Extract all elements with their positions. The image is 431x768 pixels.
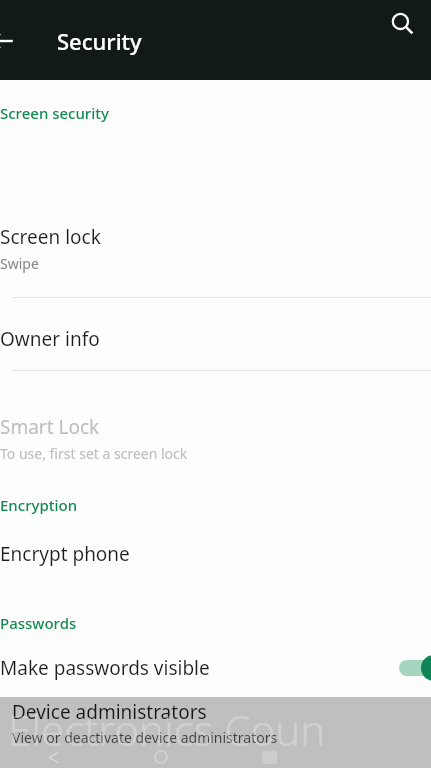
staticText: Passwords: [0, 613, 77, 633]
staticText: Encryption: [0, 495, 78, 515]
staticText: Device administrators: [12, 699, 207, 725]
button[interactable]: Search: [379, 0, 425, 46]
button[interactable]: Home: [107, 750, 215, 764]
button[interactable]: Screen lock: [12, 217, 431, 279]
button[interactable]: Device administrators: [0, 697, 431, 749]
staticText: Owner info: [0, 326, 100, 352]
button[interactable]: Smart Lock: [12, 407, 431, 469]
staticText: Encrypt phone: [0, 541, 130, 567]
staticText: Electronics Coun: [8, 701, 326, 758]
staticText: Smart Lock: [0, 414, 100, 440]
staticText: Screen security: [0, 103, 109, 123]
staticText: Screen lock: [0, 224, 101, 250]
staticText: Device administration: [0, 727, 157, 747]
staticText: Swipe: [0, 254, 39, 273]
button[interactable]: Recent apps: [215, 751, 323, 764]
staticText: Security: [57, 26, 142, 56]
staticText: Make passwords visible: [0, 655, 210, 681]
staticText: To use, first set a screen lock: [0, 444, 188, 463]
button[interactable]: Owner info: [12, 312, 431, 366]
button[interactable]: Encrypt phone: [12, 529, 431, 579]
staticText: View or deactivate device administrators: [12, 728, 278, 747]
button[interactable]: Make passwords visible: [12, 642, 431, 694]
button[interactable]: Navigate up: [0, 17, 26, 65]
